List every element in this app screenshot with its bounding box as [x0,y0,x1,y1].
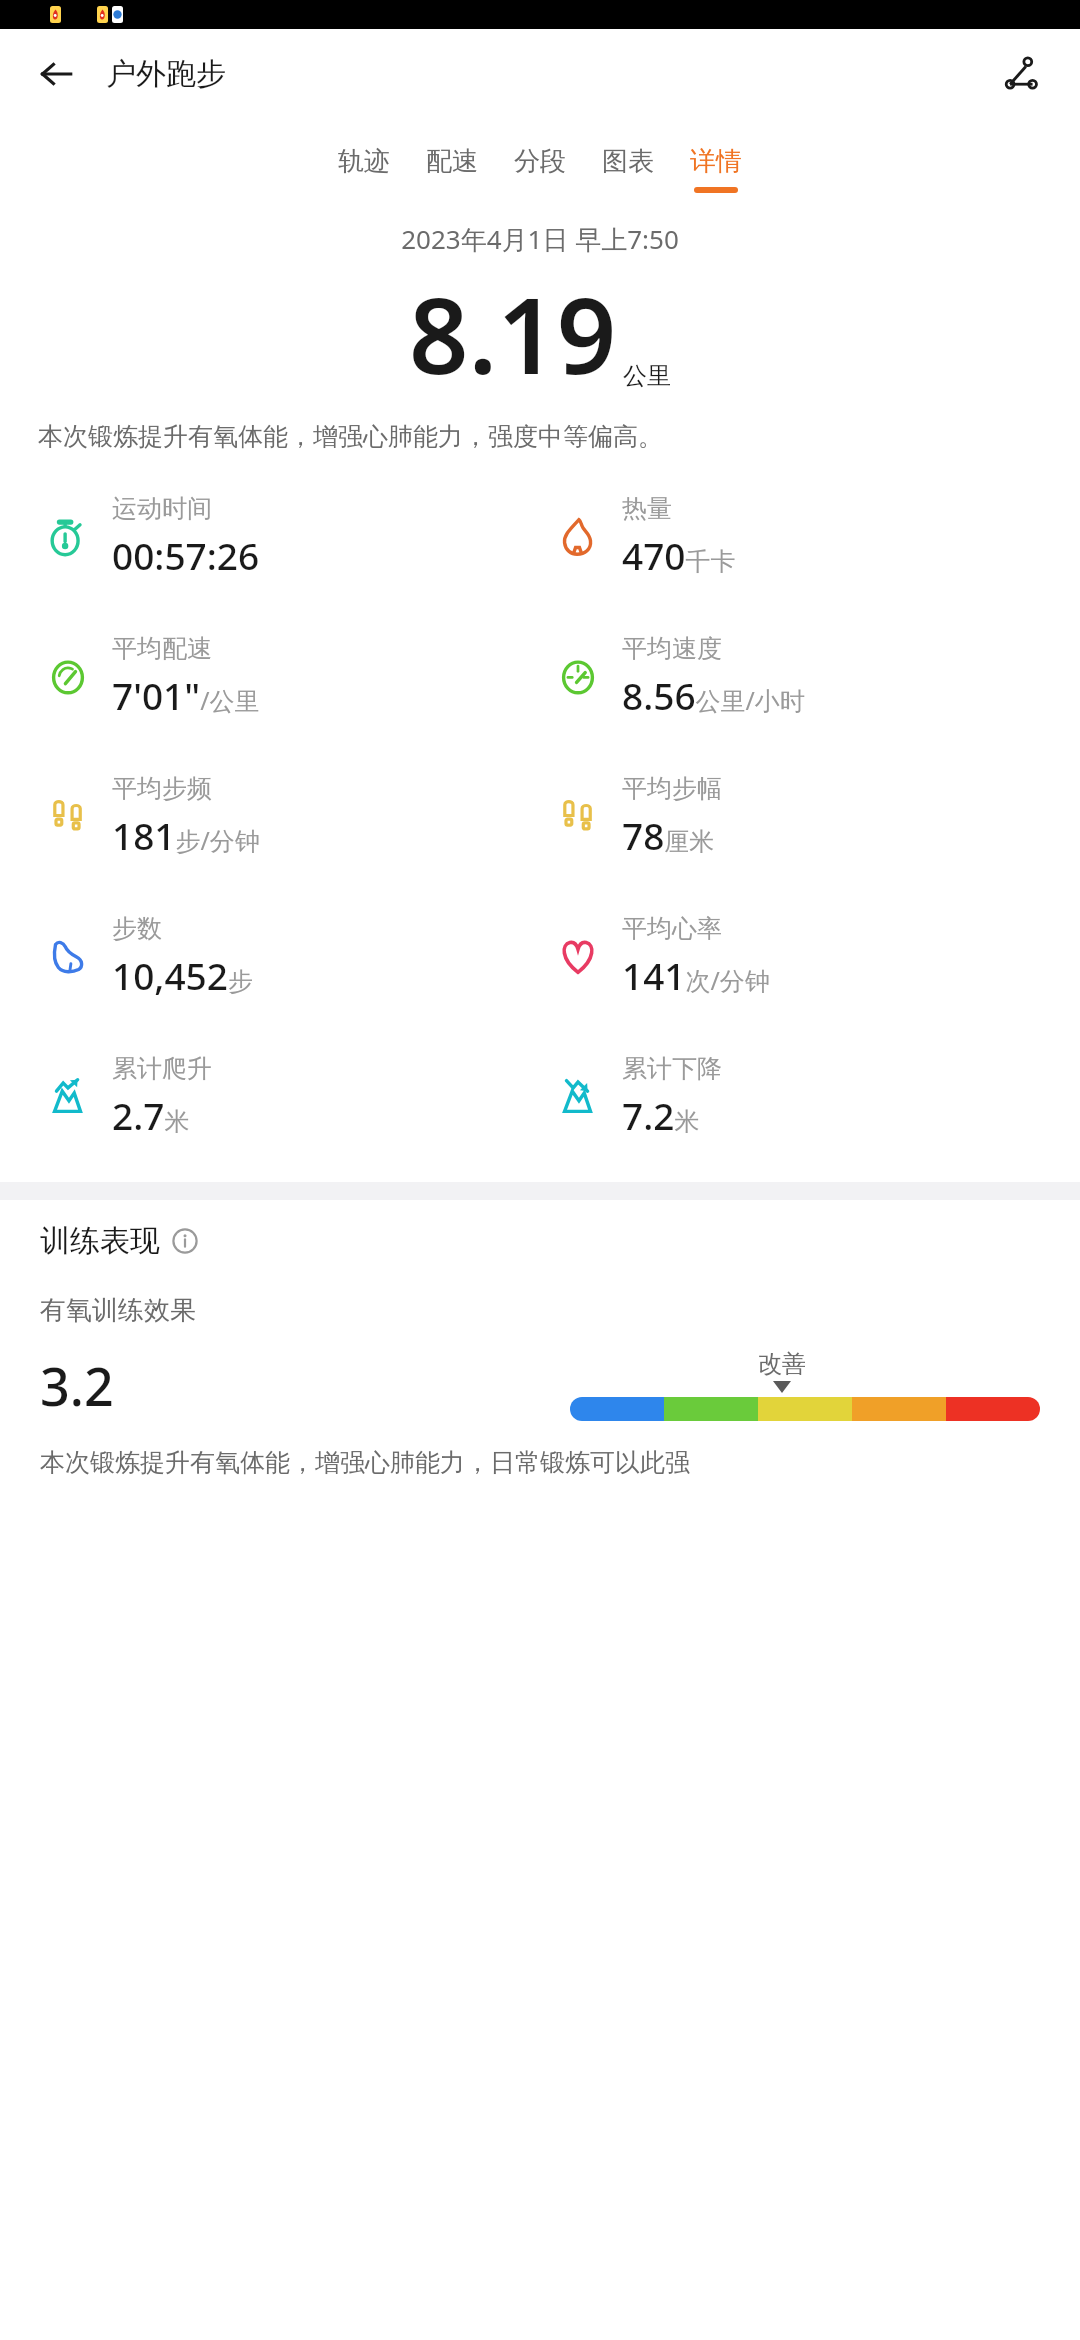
button[interactable]: 步数 [40,886,540,1026]
staticText: 步数 [112,913,162,944]
staticText: 平均配速 [112,633,212,664]
staticText: 分段 [514,145,566,178]
staticText: 改善 [758,1349,806,1379]
button[interactable]: 轨迹 [320,145,408,193]
button[interactable]: 累计爬升 [40,1026,540,1166]
staticText: 轨迹 [338,145,390,178]
staticText: 平均步幅 [622,773,722,804]
staticText: 热量 [622,493,672,524]
staticText: 2023年4月1日 早上7:50 [0,221,1080,257]
staticText: 详情 [690,145,742,178]
staticText: 有氧训练效果 [40,1294,196,1327]
staticText: 配速 [426,145,478,178]
staticText: 10,452步 [112,950,253,1000]
staticText: 公里 [623,361,671,391]
staticText: 图表 [602,145,654,178]
button[interactable]: 分段 [496,145,584,193]
button[interactable]: 图表 [584,145,672,193]
button[interactable]: 运动时间 [40,466,540,606]
staticText: 141次/分钟 [622,950,770,1000]
button[interactable]: 平均步频 [40,746,540,886]
staticText: 本次锻炼提升有氧体能，增强心肺能力，日常锻炼可以此强 [40,1447,690,1478]
staticText: 平均速度 [622,633,722,664]
button[interactable]: 累计下降 [550,1026,1080,1166]
staticText: 7.2米 [622,1090,700,1140]
button[interactable]: Share [992,45,1050,103]
staticText: 3.2 [40,1350,114,1421]
button[interactable]: 详情 [672,145,760,193]
staticText: 户外跑步 [106,55,226,93]
staticText: 470千卡 [622,530,736,580]
button[interactable]: 训练表现 [40,1222,198,1260]
staticText: 累计爬升 [112,1053,212,1084]
staticText: 2.7米 [112,1090,190,1140]
staticText: 累计下降 [622,1053,722,1084]
staticText: 00:57:26 [112,530,260,580]
staticText: 本次锻炼提升有氧体能，增强心肺能力，强度中等偏高。 [38,421,1042,452]
button[interactable]: 热量 [550,466,1080,606]
staticText: 训练表现 [40,1222,160,1260]
staticText: 平均步频 [112,773,212,804]
button[interactable]: 平均步幅 [550,746,1080,886]
button[interactable]: 平均配速 [40,606,540,746]
staticText: 181步/分钟 [112,810,260,860]
button[interactable]: 平均心率 [550,886,1080,1026]
staticText: 运动时间 [112,493,212,524]
staticText: 7'01"/公里 [112,670,260,720]
button[interactable]: Back [30,48,82,100]
button[interactable]: 配速 [408,145,496,193]
button[interactable]: 平均速度 [550,606,1080,746]
staticText: 8.56公里/小时 [622,670,805,720]
staticText: 平均心率 [622,913,722,944]
staticText: 8.19 [409,263,617,405]
staticText: 78厘米 [622,810,715,860]
